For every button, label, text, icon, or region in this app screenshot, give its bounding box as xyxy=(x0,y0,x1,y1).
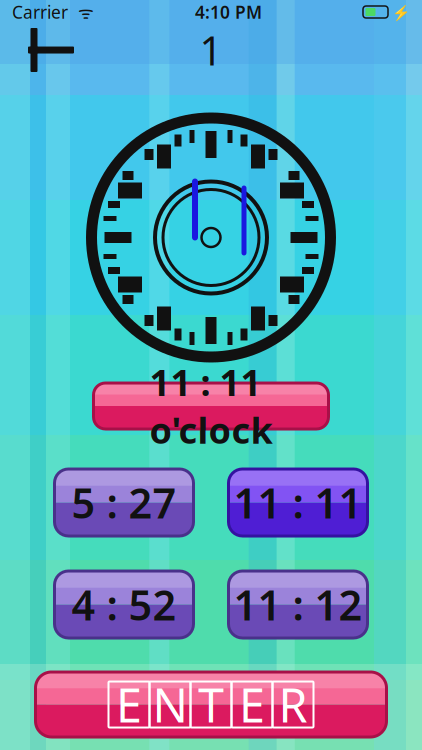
button[interactable]: 11 : 12 xyxy=(228,571,367,638)
staticText: 11 : 12 xyxy=(233,577,362,632)
button[interactable]: E xyxy=(35,672,386,737)
staticText: R xyxy=(278,673,307,735)
staticText: 11 : 11 xyxy=(233,475,362,530)
staticText: Carrier xyxy=(12,0,68,23)
button[interactable]: 11 : 11 xyxy=(228,469,367,536)
staticText: T xyxy=(198,673,224,735)
staticText: ᯤ xyxy=(68,0,94,23)
staticText: 4:10 PM xyxy=(195,0,262,23)
staticText: 1 xyxy=(199,23,222,76)
staticText: ⚡ xyxy=(388,2,410,22)
button[interactable]: Back xyxy=(16,27,78,73)
staticText: N xyxy=(152,673,187,735)
staticText: 4 : 52 xyxy=(71,577,176,632)
staticText: E xyxy=(239,673,265,735)
staticText: 11 : 11 o'clock xyxy=(149,358,272,454)
button[interactable]: 5 : 27 xyxy=(54,469,193,536)
staticText: 5 : 27 xyxy=(71,475,176,530)
staticText: E xyxy=(116,673,142,735)
button[interactable]: 4 : 52 xyxy=(54,571,193,638)
